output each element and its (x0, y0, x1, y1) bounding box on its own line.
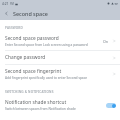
staticText: Add fingerprint specifically used to ent… (5, 76, 87, 80)
button[interactable]: Back (0, 7, 13, 20)
staticText: PM (10, 2, 14, 6)
staticText: Second space (13, 10, 48, 17)
staticText: On (103, 39, 109, 44)
button[interactable]: Change password (0, 51, 120, 64)
staticText: SWITCHING & NOTIFICATIONS (5, 90, 54, 94)
staticText: Enter Second space from Lock screen usin… (5, 43, 88, 47)
staticText: Notification shade shortcut (5, 99, 67, 106)
button[interactable]: Notification shade shortcut toggle (105, 102, 117, 109)
staticText: Second space fingerprint (5, 68, 62, 75)
staticText: Change password (5, 54, 46, 61)
button[interactable]: Second space password (0, 32, 120, 50)
staticText: 4:21 (2, 2, 9, 6)
staticText: PASSWORD (5, 26, 23, 30)
staticText: Switch between spaces from Notification … (5, 107, 76, 111)
button[interactable]: Second space fingerprint (0, 65, 120, 83)
button[interactable]: Notification shade shortcut (0, 96, 120, 114)
staticText: Second space password (5, 35, 59, 42)
